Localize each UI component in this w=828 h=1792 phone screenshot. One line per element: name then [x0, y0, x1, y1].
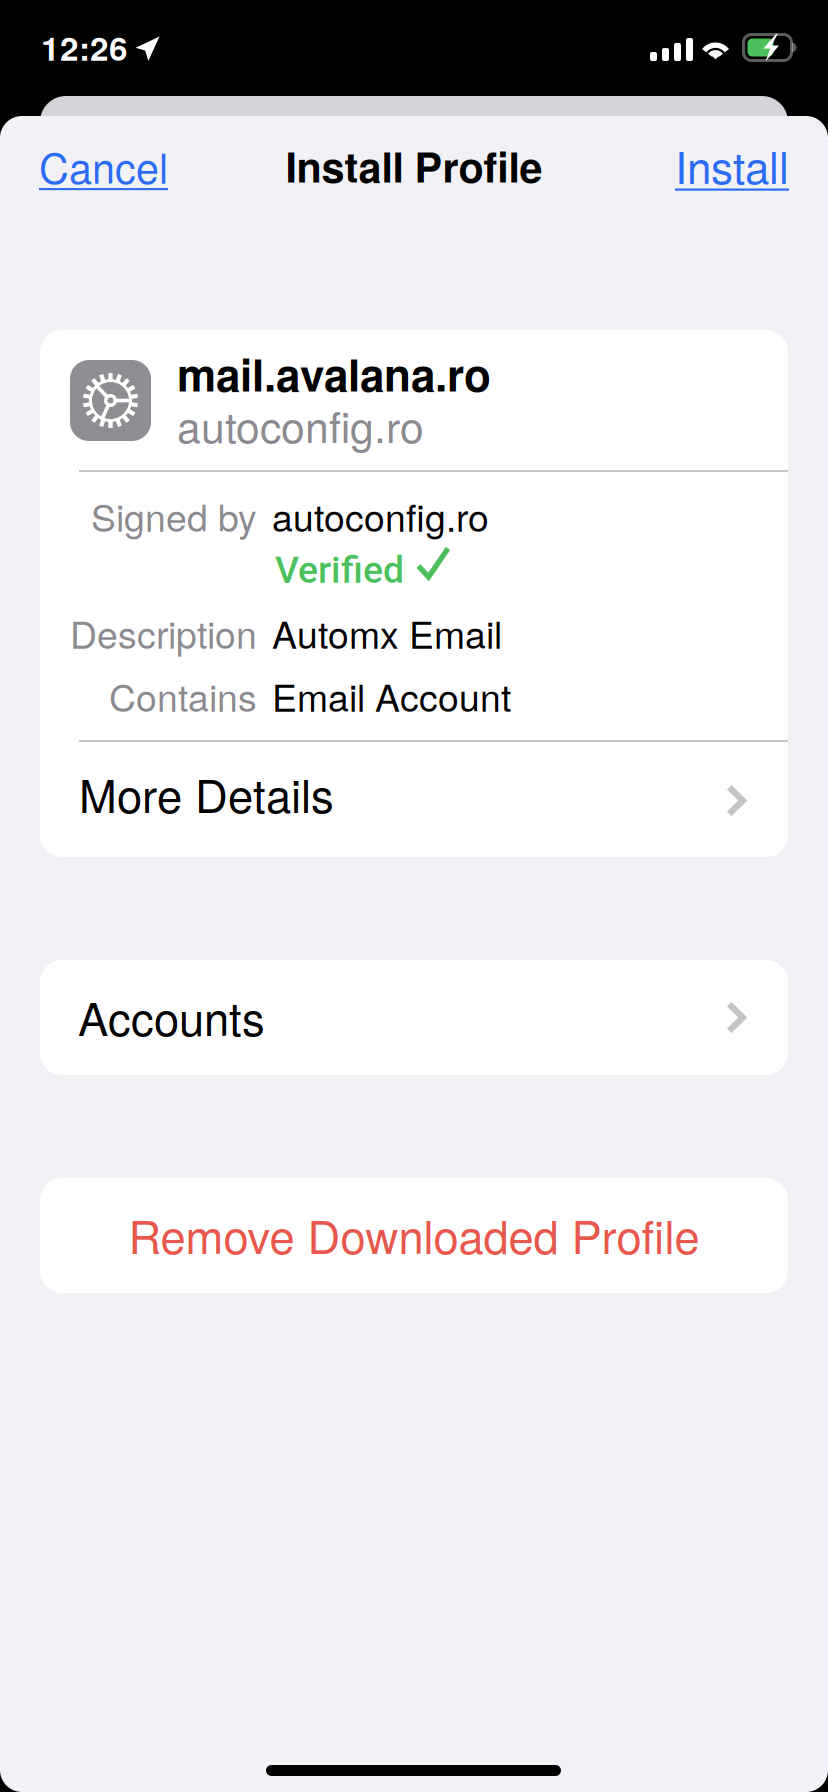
staticText: mail.avalana.ro [177, 342, 491, 405]
staticText: Cancel [39, 136, 168, 196]
staticText: 12:26 [41, 23, 128, 71]
staticText: autoconfig.ro [177, 394, 424, 455]
staticText: Contains [109, 669, 257, 722]
button[interactable]: Cancel [0, 123, 219, 209]
staticText: Verified [275, 548, 404, 592]
staticText: Signed by [91, 489, 257, 542]
button[interactable]: Remove Downloaded Profile [40, 1178, 788, 1293]
staticText: More Details [79, 761, 334, 826]
staticText: Install [675, 133, 789, 196]
staticText: Remove Downloaded Profile [128, 1202, 699, 1267]
button[interactable]: Install [609, 122, 828, 208]
button[interactable]: More Details [40, 740, 788, 857]
staticText: Email Account [272, 669, 511, 722]
staticText: Automx Email [272, 606, 502, 659]
staticText: Description [70, 606, 257, 659]
staticText: autoconfig.ro [272, 489, 489, 542]
button[interactable]: Accounts [40, 960, 788, 1075]
staticText: Accounts [78, 984, 265, 1049]
staticText: Install Profile [285, 136, 542, 195]
